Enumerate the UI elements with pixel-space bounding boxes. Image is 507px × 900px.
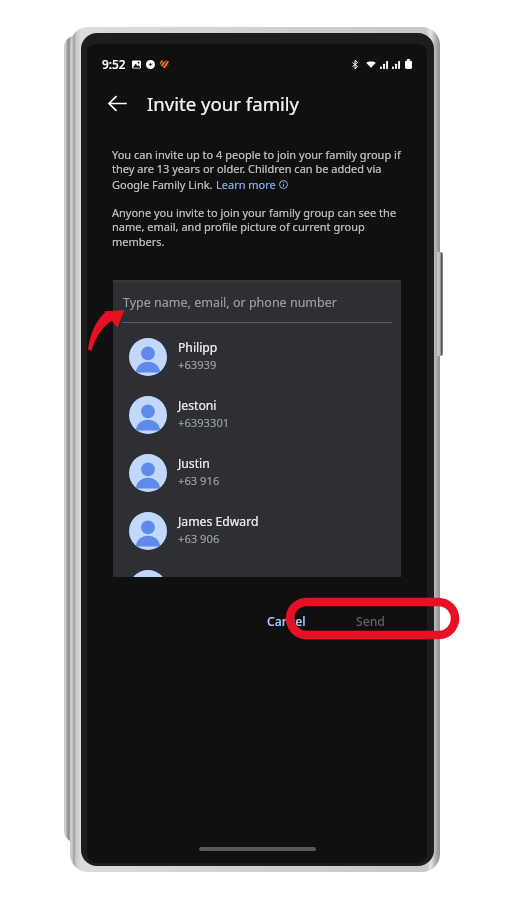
button[interactable]: James Edward	[113, 502, 401, 560]
staticText: Learn more	[216, 177, 276, 192]
staticText: +63 916	[178, 473, 220, 488]
staticText: Anyone you invite to join your family gr…	[112, 205, 397, 250]
button[interactable]: Jestoni	[113, 386, 401, 444]
button[interactable]: Back	[97, 83, 137, 123]
staticText: You can invite up to 4 people to join yo…	[112, 147, 401, 177]
button[interactable]: Justin	[113, 444, 401, 502]
staticText: Philipp	[178, 339, 218, 356]
staticText: +6393301	[178, 415, 230, 430]
button[interactable]: Learn more	[216, 177, 288, 192]
staticText: Justin	[178, 455, 210, 472]
staticText: Type name, email, or phone number	[123, 294, 337, 311]
staticText: Google Family Link.	[112, 177, 216, 192]
staticText: 9:52	[102, 56, 126, 72]
staticText: Cancel	[267, 613, 306, 630]
staticText: Jestoni	[178, 397, 217, 414]
staticText: James Edward	[178, 513, 259, 530]
staticText: +63 906	[178, 531, 220, 546]
button[interactable]: Philipp	[113, 328, 401, 386]
button[interactable]: Cancel	[255, 605, 318, 638]
staticText: Invite your family	[147, 91, 300, 116]
button[interactable]: Send	[344, 605, 397, 638]
button[interactable]	[113, 560, 401, 577]
staticText: +63939	[178, 357, 217, 372]
staticText: Send	[356, 613, 385, 630]
